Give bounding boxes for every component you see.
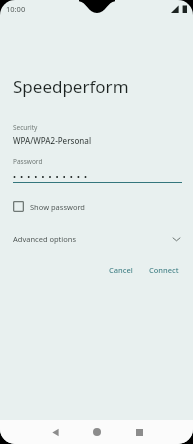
button[interactable]: Recent apps bbox=[118, 420, 160, 444]
staticText: Advanced options bbox=[13, 234, 77, 244]
staticText: WPA/WPA2-Personal bbox=[13, 135, 92, 146]
button[interactable] bbox=[0, 173, 193, 189]
staticText: Security bbox=[13, 123, 38, 132]
staticText: Cancel bbox=[109, 265, 133, 275]
staticText: 10:00 bbox=[6, 4, 26, 14]
other: Expand advanced options bbox=[172, 236, 181, 242]
button[interactable]: Cancel bbox=[104, 262, 138, 278]
button[interactable]: Connect bbox=[144, 262, 184, 278]
staticText: Speedperform bbox=[13, 75, 129, 98]
button[interactable]: Home bbox=[76, 420, 118, 444]
button[interactable]: Show password bbox=[13, 198, 91, 215]
button[interactable]: Advanced options bbox=[0, 229, 193, 249]
staticText: Password bbox=[13, 157, 43, 166]
staticText: Show password bbox=[30, 202, 85, 212]
staticText: Connect bbox=[149, 265, 179, 275]
button[interactable]: Back bbox=[34, 420, 76, 444]
